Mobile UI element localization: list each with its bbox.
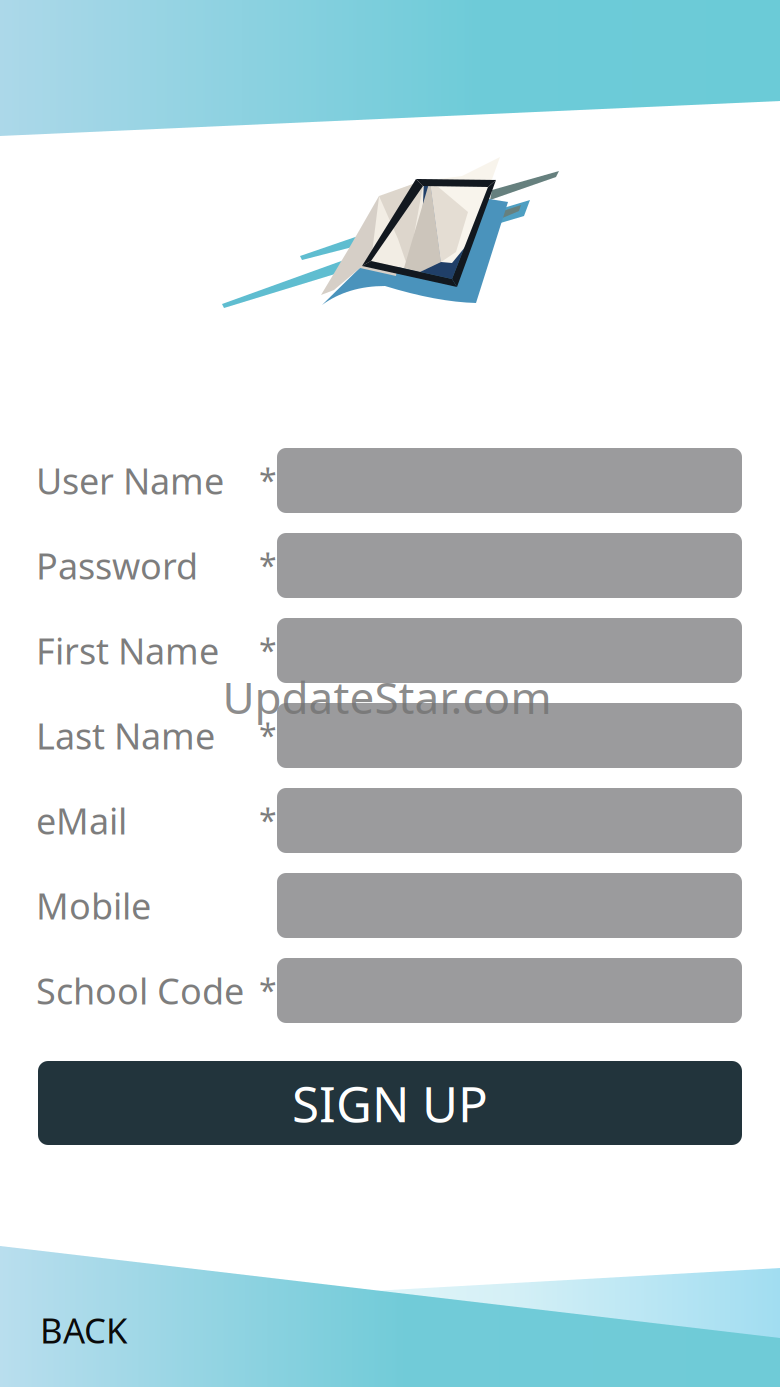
staticText: eMail — [36, 797, 127, 844]
staticText: Password — [36, 542, 198, 589]
staticText: * — [259, 714, 277, 756]
button[interactable]: SIGN UP — [38, 1061, 742, 1145]
staticText: Mobile — [36, 882, 151, 929]
staticText: BACK — [40, 1307, 127, 1353]
staticText: Last Name — [36, 712, 215, 759]
staticText: SIGN UP — [292, 1070, 488, 1136]
staticText: * — [259, 629, 277, 671]
staticText: * — [259, 799, 277, 841]
button[interactable]: BACK — [40, 1305, 140, 1355]
staticText: * — [259, 969, 277, 1011]
staticText: User Name — [36, 457, 224, 504]
staticText: UpdateStar.com — [222, 668, 551, 726]
staticText: First Name — [36, 627, 219, 674]
staticText: School Code — [36, 967, 244, 1014]
staticText: * — [259, 544, 277, 586]
staticText: * — [259, 459, 277, 501]
